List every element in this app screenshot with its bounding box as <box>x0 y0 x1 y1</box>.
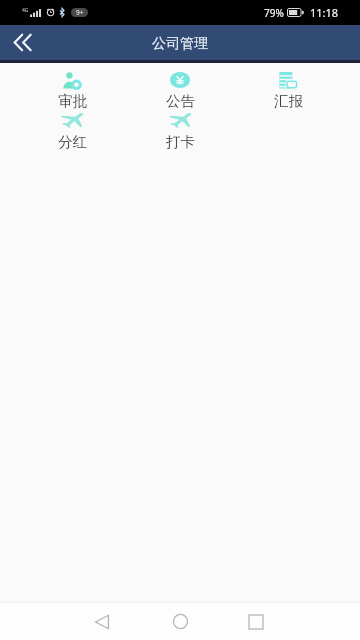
staticText: 汇报 <box>274 92 303 110</box>
button[interactable]: 公告 <box>126 63 234 104</box>
button[interactable]: Home <box>158 603 202 640</box>
button[interactable]: Recents <box>234 603 278 640</box>
staticText: 79% <box>264 6 284 20</box>
staticText: 11:18 <box>310 5 339 20</box>
staticText: 4G <box>22 7 29 14</box>
button[interactable]: 分红 <box>18 104 126 145</box>
staticText: 审批 <box>58 92 87 110</box>
staticText: 公告 <box>166 92 195 110</box>
button[interactable]: 审批 <box>18 63 126 104</box>
staticText: 9+ <box>76 8 84 17</box>
button[interactable]: 汇报 <box>234 63 342 104</box>
staticText: 公司管理 <box>152 35 208 53</box>
staticText: 分红 <box>58 133 87 151</box>
button[interactable]: 打卡 <box>126 104 234 145</box>
button[interactable]: Back <box>80 603 124 640</box>
staticText: 打卡 <box>166 133 195 151</box>
button[interactable]: Back <box>4 25 40 60</box>
